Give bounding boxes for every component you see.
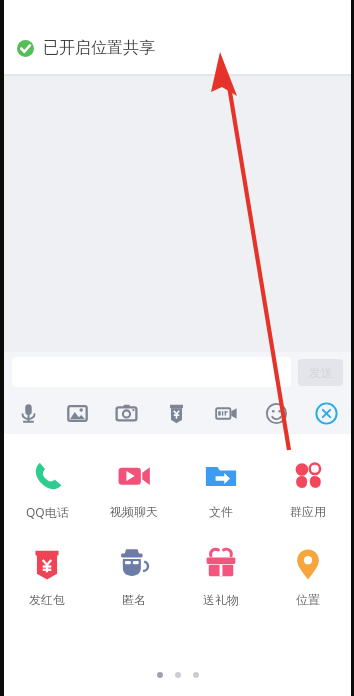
staticText: 已开启位置共享 bbox=[43, 38, 155, 58]
button[interactable]: 送礼物 bbox=[177, 546, 264, 607]
staticText: 位置 bbox=[296, 592, 320, 607]
staticText: QQ电话 bbox=[26, 504, 69, 520]
button[interactable]: 匿名 bbox=[90, 546, 177, 607]
button[interactable]: 群应用 bbox=[264, 458, 351, 519]
button[interactable]: 文件 bbox=[177, 458, 264, 519]
staticText: 发红包 bbox=[29, 592, 65, 607]
button[interactable]: Photo bbox=[53, 392, 102, 434]
staticText: 送礼物 bbox=[203, 592, 239, 607]
staticText: 文件 bbox=[209, 504, 233, 519]
button[interactable]: 位置 bbox=[264, 546, 351, 607]
button[interactable]: Close panel bbox=[301, 392, 351, 434]
staticText: 群应用 bbox=[290, 504, 326, 519]
button[interactable]: 已开启位置共享 bbox=[17, 38, 155, 58]
button[interactable]: Emoji bbox=[251, 392, 301, 434]
button[interactable]: 发送 bbox=[298, 359, 343, 386]
button[interactable]: 发红包 bbox=[4, 546, 90, 607]
button[interactable]: GIF bbox=[201, 392, 251, 434]
button[interactable] bbox=[12, 357, 291, 387]
staticText: 视频聊天 bbox=[110, 504, 158, 519]
button[interactable]: Red packet bbox=[151, 392, 201, 434]
button[interactable]: 视频聊天 bbox=[90, 458, 177, 519]
staticText: 匿名 bbox=[122, 592, 146, 607]
button[interactable]: Voice message bbox=[4, 392, 53, 434]
staticText: 发送 bbox=[309, 365, 333, 380]
button[interactable]: Camera bbox=[102, 392, 151, 434]
button[interactable]: QQ电话 bbox=[4, 458, 90, 520]
